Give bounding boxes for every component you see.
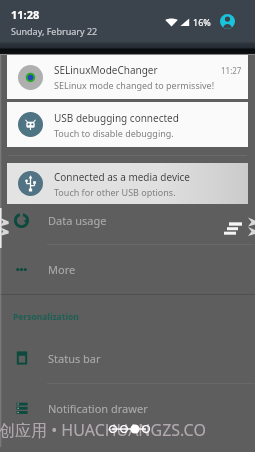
staticText: Personalization: [13, 311, 79, 323]
button[interactable]: Status bar: [0, 334, 255, 382]
button[interactable]: Connected as a media device: [7, 163, 248, 204]
staticText: More: [48, 262, 76, 277]
staticText: Status bar: [48, 351, 101, 366]
button[interactable]: Data usage: [0, 196, 255, 244]
staticText: 创应用 • HUACHUANGZS.CO: [0, 419, 206, 441]
button[interactable]: SELinuxModeChanger: [7, 55, 248, 99]
button[interactable]: Notification drawer: [0, 384, 255, 432]
staticText: SELinux mode changed to permissive!: [54, 79, 215, 91]
button[interactable]: User profile: [220, 14, 235, 29]
staticText: Touch to disable debugging.: [54, 127, 174, 139]
button[interactable]: More: [0, 245, 255, 293]
staticText: 11:28: [11, 7, 40, 22]
staticText: USB debugging connected: [54, 111, 179, 125]
staticText: SELinuxModeChanger: [54, 63, 158, 77]
staticText: Connected as a media device: [54, 170, 190, 184]
staticText: Sunday, February 22: [11, 25, 98, 37]
staticText: Touch for other USB options.: [54, 186, 176, 198]
button[interactable]: USB debugging connected: [7, 102, 248, 147]
staticText: Notification drawer: [48, 401, 148, 416]
staticText: 16%: [193, 16, 211, 28]
staticText: 11:27: [221, 65, 242, 76]
staticText: Data usage: [48, 213, 107, 228]
